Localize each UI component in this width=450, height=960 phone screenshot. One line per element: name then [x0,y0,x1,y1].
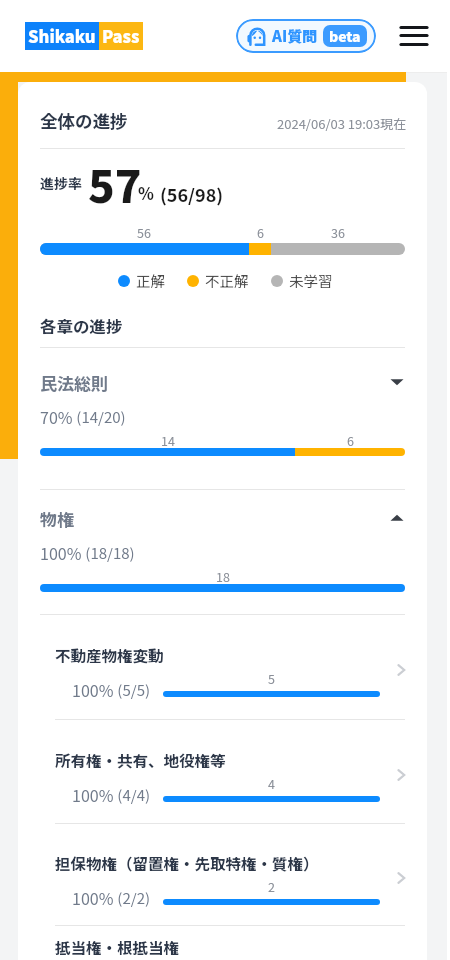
staticText: % [138,181,154,205]
staticText: 6 [257,223,264,241]
staticText: 不正解 [205,270,249,291]
button[interactable]: Shikaku [25,22,143,50]
button[interactable]: 不正解 [187,270,249,291]
staticText: Pass [102,24,140,48]
staticText: (56/98) [160,181,224,207]
staticText: 70% [40,405,73,428]
staticText: 14 [161,431,175,449]
staticText: (2/2) [114,887,151,909]
staticText: 民法総則 [40,370,108,395]
staticText: (4/4) [114,784,151,806]
staticText: (14/20) [73,406,126,428]
staticText: 物権 [40,506,74,531]
staticText: 未学習 [289,270,333,291]
staticText: AI質問 [272,25,318,47]
button[interactable]: Menu [396,19,432,55]
staticText: Shikaku [28,24,96,48]
staticText: 不動産物権変動 [55,644,164,666]
staticText: 18 [216,567,230,585]
button[interactable]: 担保物権（留置権・先取特権・質権） [55,848,405,920]
staticText: 4 [268,774,275,792]
staticText: 2024/06/03 19:03現在 [277,114,407,133]
staticText: 6 [347,431,354,449]
staticText: 57 [88,152,142,216]
staticText: 100% [40,541,82,564]
button[interactable]: 正解 [118,270,165,291]
staticText: 進捗率 [40,173,82,193]
staticText: 各章の進捗 [40,314,123,338]
button[interactable]: AI質問 [236,19,376,53]
button[interactable]: 不動産物権変動 [55,640,405,712]
staticText: 100% [72,886,114,909]
staticText: 正解 [136,270,165,291]
staticText: 100% [72,678,114,701]
staticText: 100% [72,783,114,806]
staticText: 56 [137,223,151,241]
staticText: beta [329,26,361,46]
button[interactable]: 物権 [40,506,405,602]
staticText: 抵当権・根抵当権 [55,936,180,958]
staticText: 2 [268,877,275,895]
button[interactable]: 所有権・共有、地役権等 [55,745,405,817]
button[interactable]: 民法総則 [40,370,405,466]
staticText: 全体の進捗 [40,108,128,133]
other: Expand [390,375,404,389]
staticText: 担保物権（留置権・先取特権・質権） [55,852,319,874]
other: Collapse [390,511,404,525]
staticText: 所有権・共有、地役権等 [55,749,226,771]
staticText: (18/18) [82,542,135,564]
staticText: 5 [268,669,275,687]
button[interactable]: 未学習 [271,270,333,291]
staticText: 36 [331,223,345,241]
staticText: (5/5) [114,679,151,701]
